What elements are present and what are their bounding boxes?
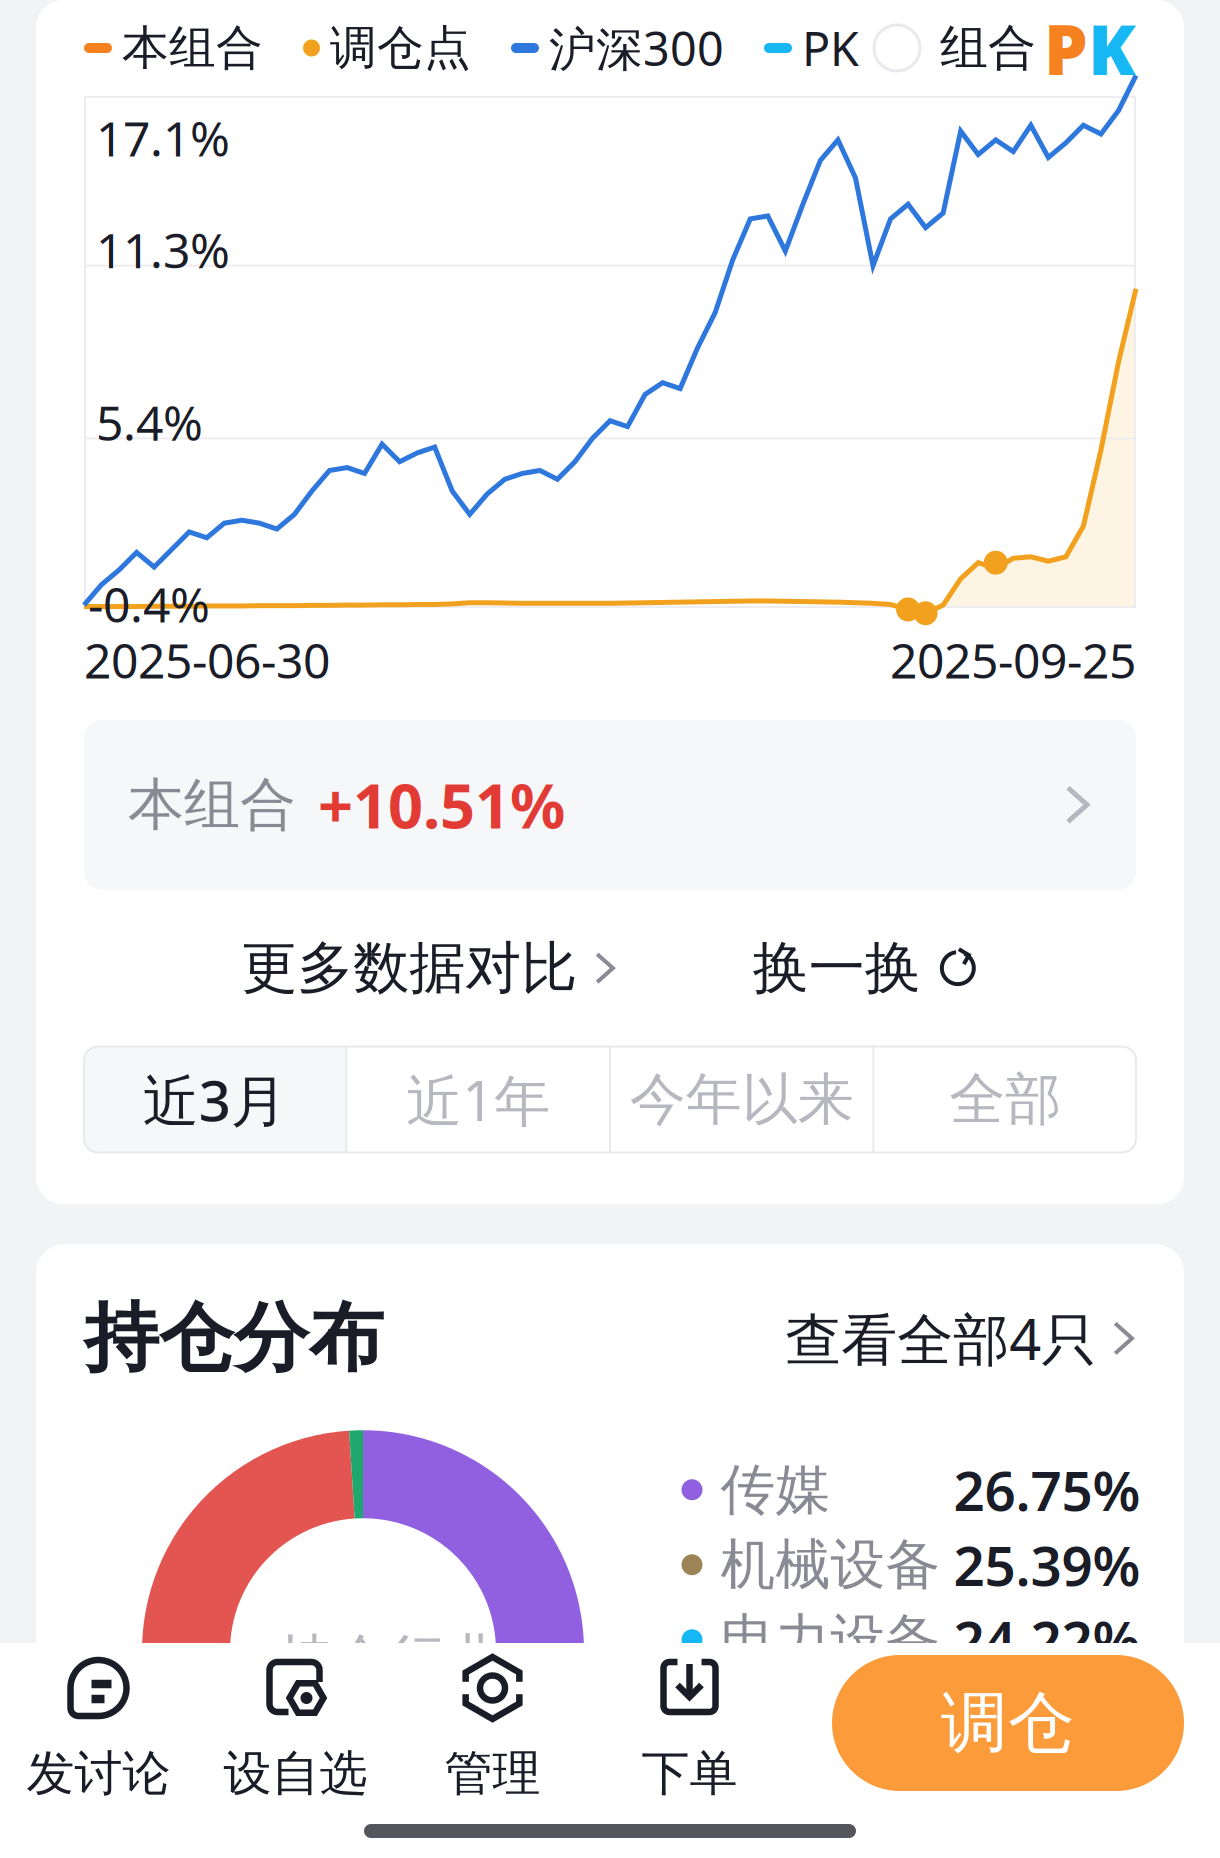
staticText: PK — [802, 17, 859, 79]
button[interactable]: 更多数据对比 — [241, 934, 617, 1002]
button[interactable]: 近1年 — [347, 1046, 609, 1152]
button[interactable]: 今年以来 — [611, 1046, 872, 1152]
button[interactable]: 近3月 — [84, 1046, 345, 1152]
staticText: +10.51% — [318, 764, 565, 845]
staticText: 近1年 — [406, 1062, 550, 1137]
staticText: 换一换 — [753, 934, 921, 1002]
staticText: P — [1044, 2, 1088, 94]
staticText: 电力设备 — [720, 1606, 940, 1673]
staticText: 近3月 — [143, 1062, 287, 1137]
staticText: -0.4% — [88, 572, 210, 636]
staticText: 发讨论 — [26, 1744, 170, 1803]
staticText: 更多数据对比 — [241, 934, 577, 1002]
staticText: 本组合 — [122, 19, 263, 77]
staticText: 全部 — [949, 1065, 1061, 1134]
staticText: 管理 — [444, 1744, 540, 1803]
staticText: 24.22% — [953, 1603, 1140, 1676]
staticText: K — [1088, 2, 1136, 94]
button[interactable]: 调仓 — [832, 1655, 1184, 1791]
button[interactable]: 换一换 — [753, 934, 979, 1002]
staticText: 组合 — [940, 18, 1036, 77]
staticText: 11.3% — [96, 218, 230, 281]
staticText: 持仓分布 — [84, 1292, 384, 1384]
staticText: 2025-06-30 — [84, 628, 330, 692]
staticText: 查看全部4只 — [785, 1301, 1097, 1376]
staticText: 本组合 — [128, 770, 296, 839]
button[interactable]: 全部 — [874, 1046, 1136, 1152]
staticText: 持仓行业 — [277, 1626, 501, 1695]
staticText: 沪深300 — [549, 17, 724, 79]
button[interactable]: 组合 — [874, 2, 1136, 94]
button[interactable]: 设自选 — [197, 1632, 394, 1814]
staticText: 传媒 — [720, 1456, 830, 1523]
staticText: 设自选 — [223, 1744, 367, 1803]
staticText: 机械设备 — [720, 1531, 940, 1598]
button[interactable]: 下单 — [591, 1632, 788, 1814]
button[interactable]: 本组合 — [84, 720, 1136, 890]
staticText: 今年以来 — [630, 1065, 854, 1134]
staticText: 2025-09-25 — [890, 628, 1136, 692]
staticText: 17.1% — [96, 106, 230, 170]
staticText: 5.4% — [96, 390, 203, 454]
staticText: 调仓 — [941, 1682, 1075, 1764]
staticText: 下单 — [641, 1744, 737, 1803]
staticText: 26.75% — [953, 1453, 1140, 1526]
staticText: 25.39% — [953, 1528, 1140, 1601]
button[interactable]: 发讨论 — [0, 1632, 197, 1814]
button[interactable]: 管理 — [394, 1632, 591, 1814]
staticText: 调仓点 — [330, 19, 471, 77]
button[interactable]: 查看全部4只 — [785, 1301, 1136, 1376]
